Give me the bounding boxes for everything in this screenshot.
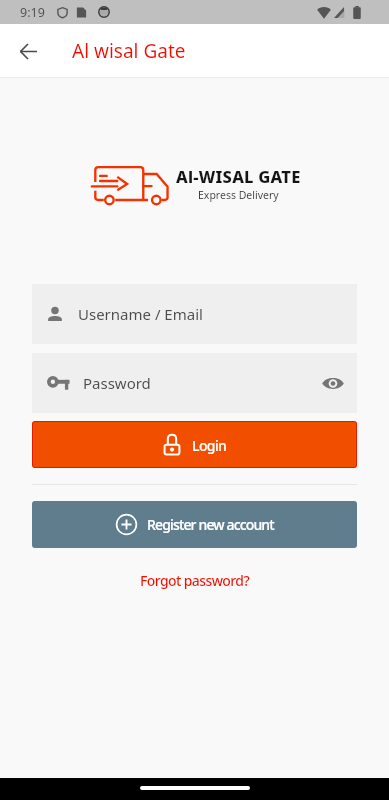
- staticText: Username / Email: [78, 304, 203, 324]
- staticText: Login: [192, 436, 227, 455]
- staticText: 9:19: [20, 4, 45, 21]
- button[interactable]: Register new account: [32, 501, 357, 548]
- button[interactable]: Password: [32, 353, 357, 413]
- staticText: Express Delivery: [198, 188, 279, 202]
- button[interactable]: Forgot password?: [134, 568, 256, 593]
- staticText: Password: [83, 373, 151, 393]
- staticText: Forgot password?: [140, 571, 250, 590]
- button[interactable]: Show password: [318, 368, 348, 398]
- button[interactable]: Back: [8, 31, 48, 71]
- staticText: Al wisal Gate: [72, 38, 186, 64]
- staticText: Al-WISAL GATE: [176, 165, 301, 187]
- button[interactable]: Username / Email: [32, 284, 357, 344]
- staticText: Register new account: [147, 515, 274, 534]
- button[interactable]: Login: [32, 421, 357, 468]
